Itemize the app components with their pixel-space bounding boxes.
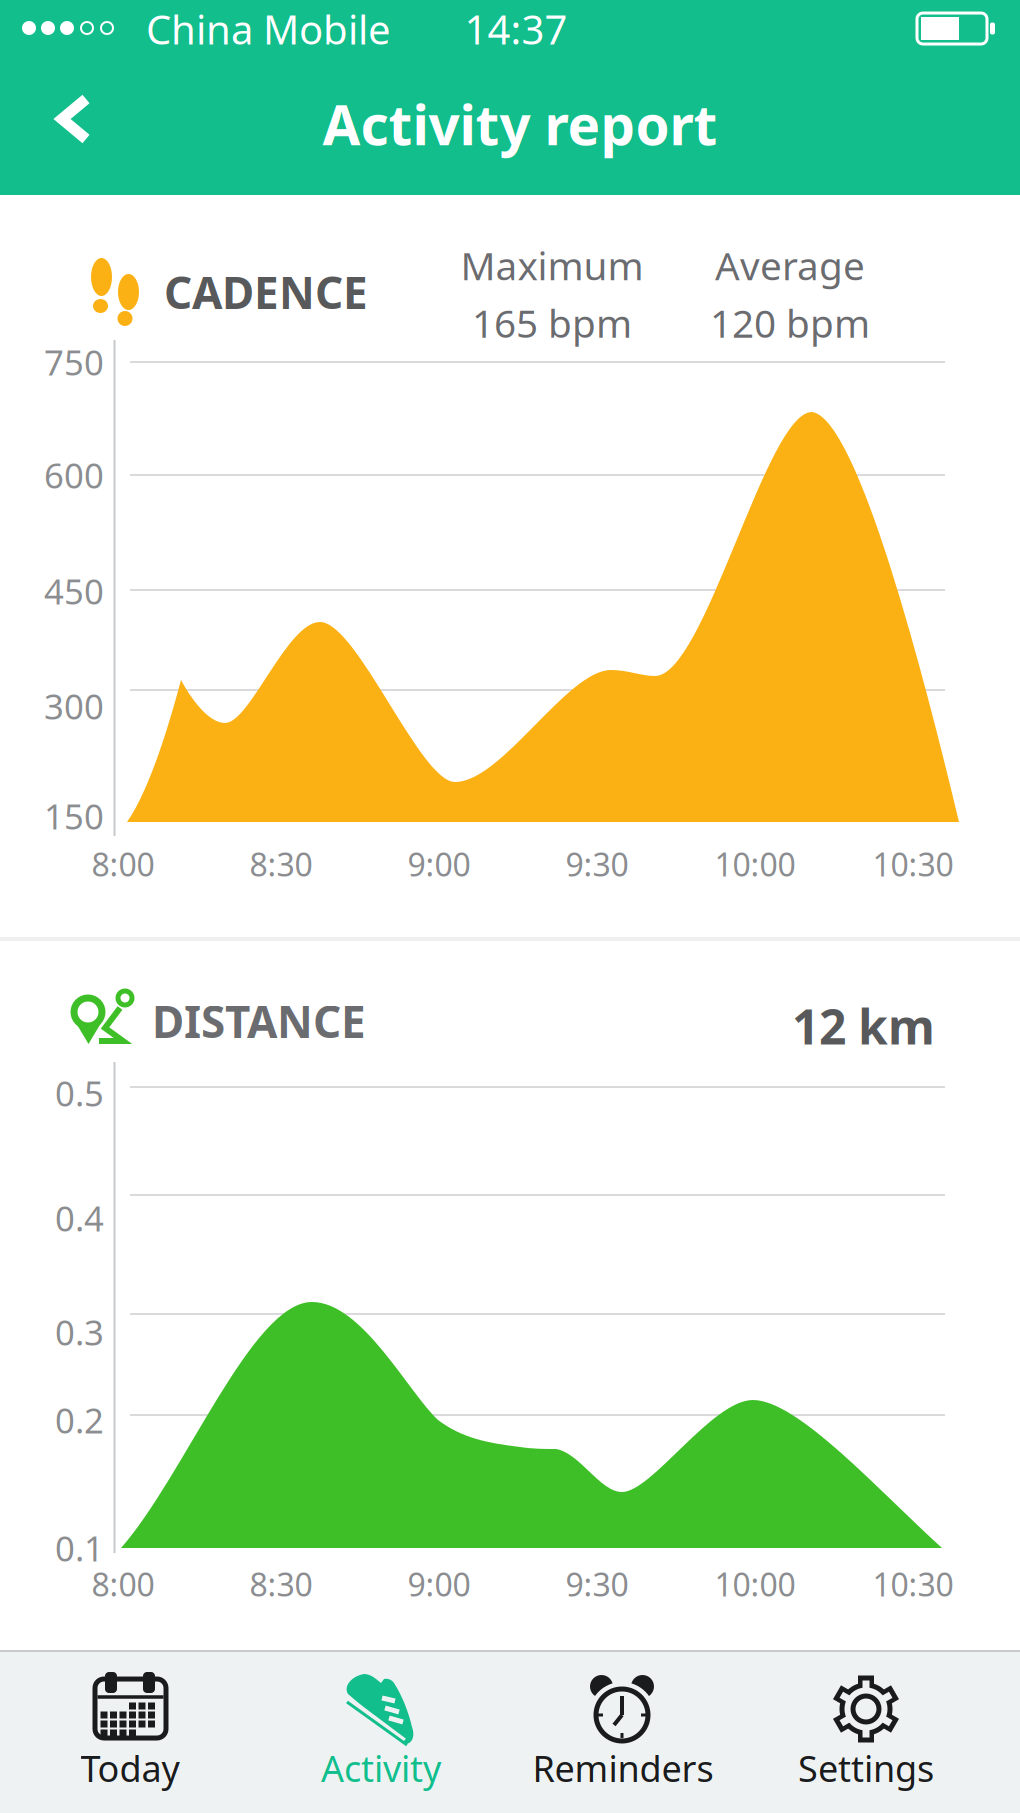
staticText: 10:30 <box>872 843 953 885</box>
staticText: 10:00 <box>714 1563 795 1605</box>
staticText: 9:00 <box>407 1563 470 1605</box>
staticText: Average <box>715 240 865 291</box>
staticText: China Mobile <box>146 2 391 55</box>
staticText: 0.3 <box>55 1309 104 1355</box>
staticText: 8:00 <box>91 843 154 885</box>
staticText: 0.5 <box>55 1070 104 1116</box>
button[interactable]: Today <box>0 1652 255 1813</box>
staticText: 150 <box>44 793 104 839</box>
staticText: 600 <box>44 452 104 498</box>
staticText: 9:30 <box>565 1563 628 1605</box>
staticText: DISTANCE <box>152 992 366 1050</box>
button[interactable]: Activity <box>255 1652 510 1813</box>
staticText: 9:30 <box>565 843 628 885</box>
staticText: Activity <box>321 1744 441 1792</box>
staticText: 0.2 <box>55 1397 104 1443</box>
staticText: 0.1 <box>55 1525 104 1571</box>
staticText: 9:00 <box>407 843 470 885</box>
staticText: 450 <box>44 568 104 614</box>
button[interactable]: Settings <box>765 1652 1020 1813</box>
button[interactable]: Back <box>27 72 121 166</box>
staticText: 14:37 <box>464 2 567 55</box>
staticText: CADENCE <box>164 263 368 321</box>
staticText: 10:30 <box>872 1563 953 1605</box>
staticText: Settings <box>798 1744 934 1792</box>
staticText: 8:00 <box>91 1563 154 1605</box>
staticText: 0.4 <box>55 1195 104 1241</box>
staticText: Maximum <box>460 240 643 291</box>
staticText: 750 <box>44 339 104 385</box>
staticText: 8:30 <box>249 1563 312 1605</box>
button[interactable]: Reminders <box>510 1652 765 1813</box>
staticText: Activity report <box>322 88 717 160</box>
staticText: 12 km <box>792 994 935 1058</box>
staticText: 10:00 <box>714 843 795 885</box>
staticText: Today <box>80 1744 179 1792</box>
staticText: 8:30 <box>249 843 312 885</box>
staticText: 120 bpm <box>710 297 870 348</box>
staticText: 300 <box>44 683 104 729</box>
staticText: Reminders <box>532 1744 713 1792</box>
staticText: 165 bpm <box>472 297 632 348</box>
